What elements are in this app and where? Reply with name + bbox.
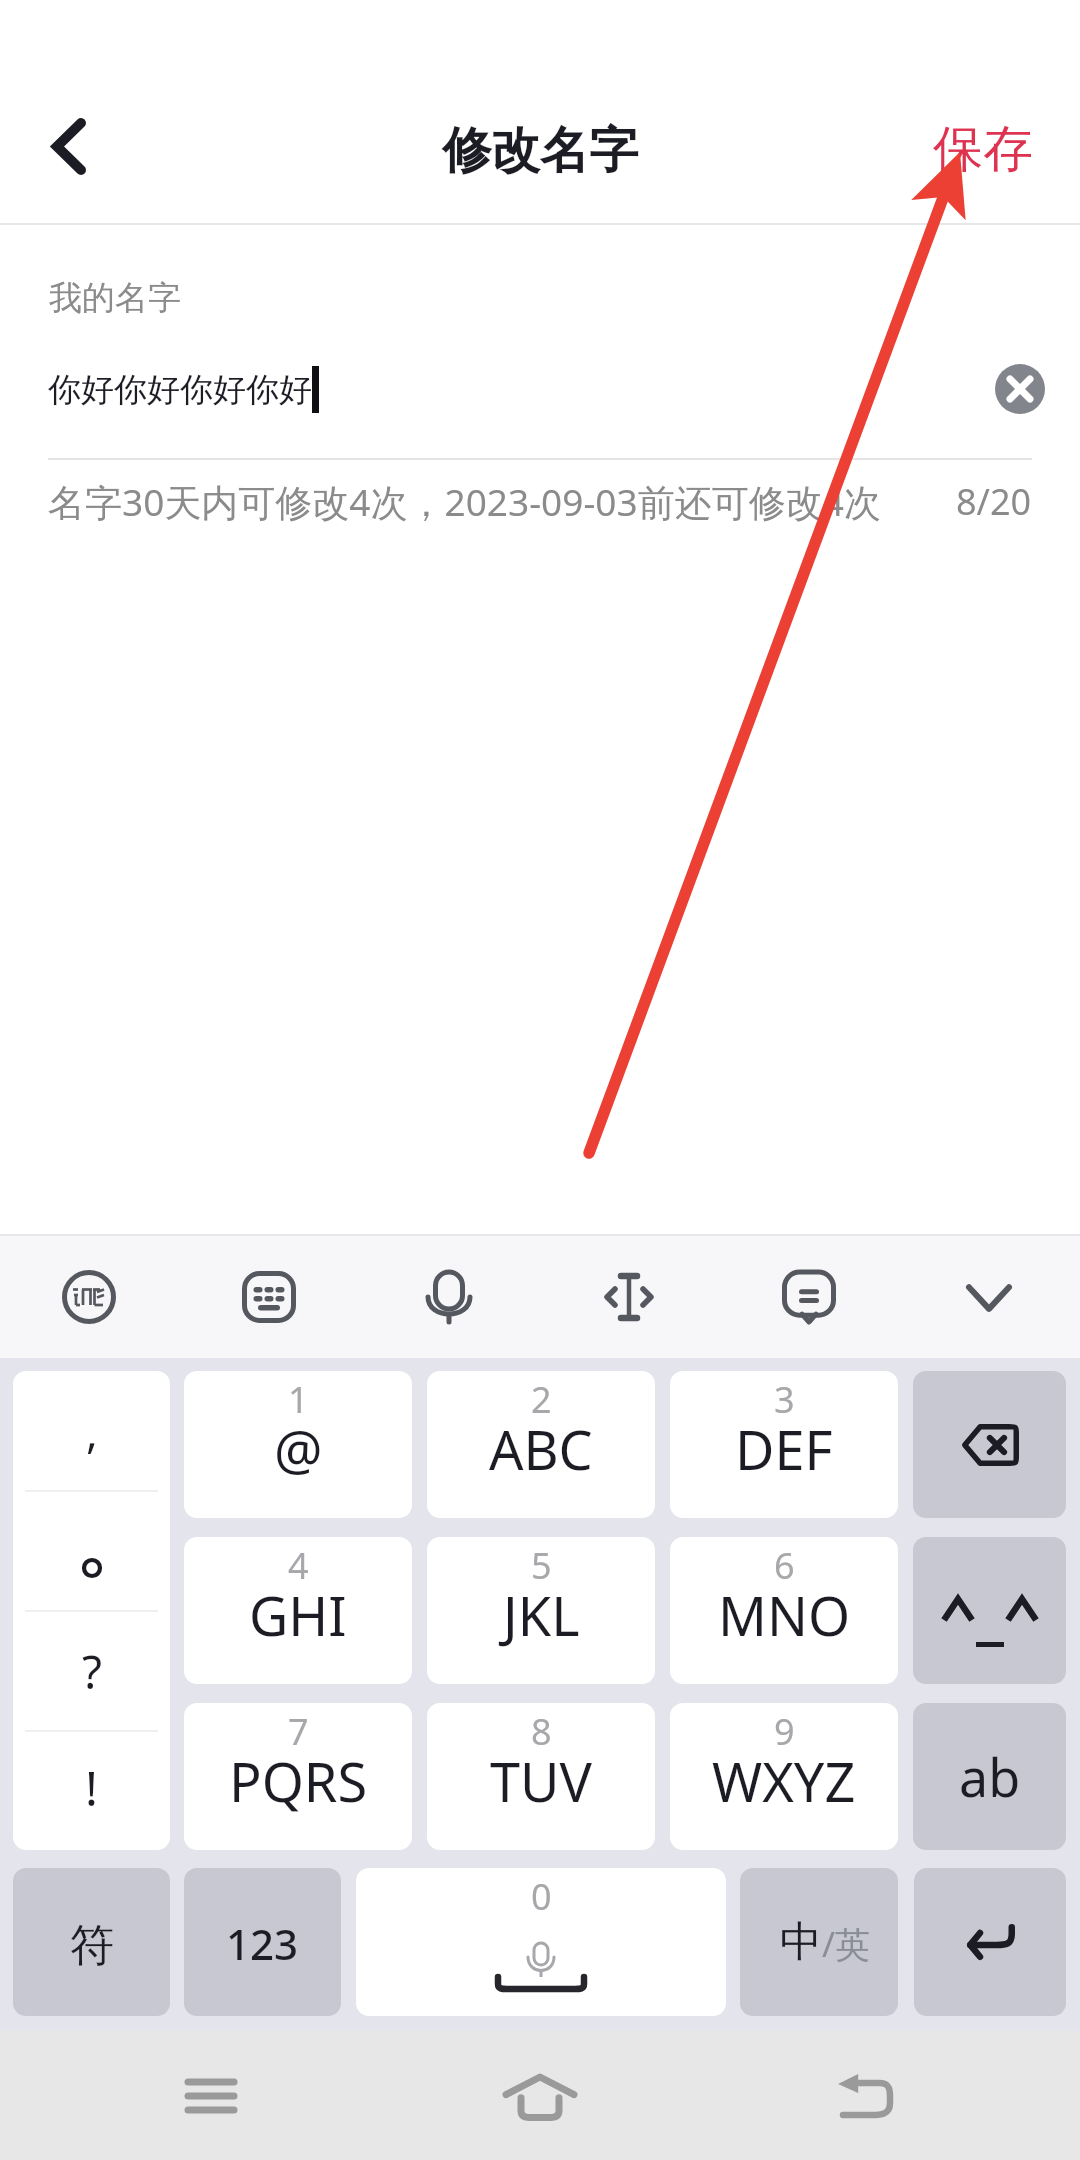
button[interactable]: ! [13,1732,170,1850]
button[interactable]: Phrases [754,1242,864,1352]
staticText: 你好你好你好你好 [48,369,312,411]
staticText: /英 [822,1920,871,1968]
staticText: ABC [489,1412,593,1486]
button[interactable]: 符 [13,1868,170,2016]
button[interactable]: 保存 [883,97,1080,201]
staticText: JKL [503,1578,580,1652]
button[interactable]: Space [356,1868,726,2016]
button[interactable]: Back [16,94,121,199]
button[interactable]: Recent apps [141,2031,281,2160]
staticText: 我的名字 [49,277,181,319]
button[interactable]: 7 [184,1703,412,1850]
button[interactable]: Delete [913,1371,1066,1518]
staticText: 8 [531,1707,552,1756]
button[interactable]: 8 [427,1703,655,1850]
staticText: 符 [70,1918,114,1973]
staticText: MNO [718,1578,851,1652]
button[interactable]: Keyboard layout [214,1242,324,1352]
button[interactable]: 2 [427,1371,655,1518]
button[interactable]: Hide keyboard [934,1242,1044,1352]
staticText: 3 [774,1375,795,1424]
staticText: ab [959,1741,1021,1812]
staticText: 0 [531,1872,552,1921]
staticText: 6 [774,1541,795,1590]
staticText: 7 [288,1707,309,1756]
staticText: 保存 [933,118,1033,181]
button[interactable]: 1 [184,1371,412,1518]
button[interactable]: Emoticons [913,1537,1066,1684]
button[interactable]: 9 [670,1703,898,1850]
staticText: 123 [226,1915,299,1972]
staticText: PQRS [229,1744,368,1818]
button[interactable]: 5 [427,1537,655,1684]
button[interactable]: 123 [184,1868,341,2016]
button[interactable]: 3 [670,1371,898,1518]
staticText: TUV [490,1744,592,1818]
button[interactable]: Full stop [13,1492,170,1610]
button[interactable]: Move cursor [574,1242,684,1352]
staticText: , [86,1401,98,1461]
staticText: 1 [288,1375,309,1424]
button[interactable]: Home [470,2031,610,2160]
staticText: ? [82,1640,102,1703]
staticText: 4 [288,1541,309,1590]
button[interactable]: Back [796,2031,936,2160]
staticText: 中 [780,1916,822,1969]
staticText: 5 [531,1541,552,1590]
button[interactable]: Switch to letters [913,1703,1066,1850]
staticText: 修改名字 [442,120,638,182]
button[interactable]: , [13,1371,170,1490]
button[interactable]: Enter [914,1868,1066,2016]
staticText: ! [85,1755,98,1820]
staticText: 8/20 [956,477,1032,526]
staticText: WXYZ [712,1744,856,1818]
staticText: GHI [249,1578,347,1652]
staticText: DEF [735,1412,833,1486]
button[interactable]: ? [13,1612,170,1730]
button[interactable]: Voice input [394,1242,504,1352]
button[interactable]: 4 [184,1537,412,1684]
button[interactable]: Clear text [984,353,1056,425]
staticText: 9 [774,1707,795,1756]
button[interactable]: 中 [740,1868,898,2016]
staticText: 名字30天内可修改4次，2023-09-03前还可修改4次 [48,476,881,527]
staticText: @ [274,1412,323,1486]
staticText: 2 [531,1375,552,1424]
button[interactable]: 6 [670,1537,898,1684]
button[interactable]: Input method [34,1242,144,1352]
